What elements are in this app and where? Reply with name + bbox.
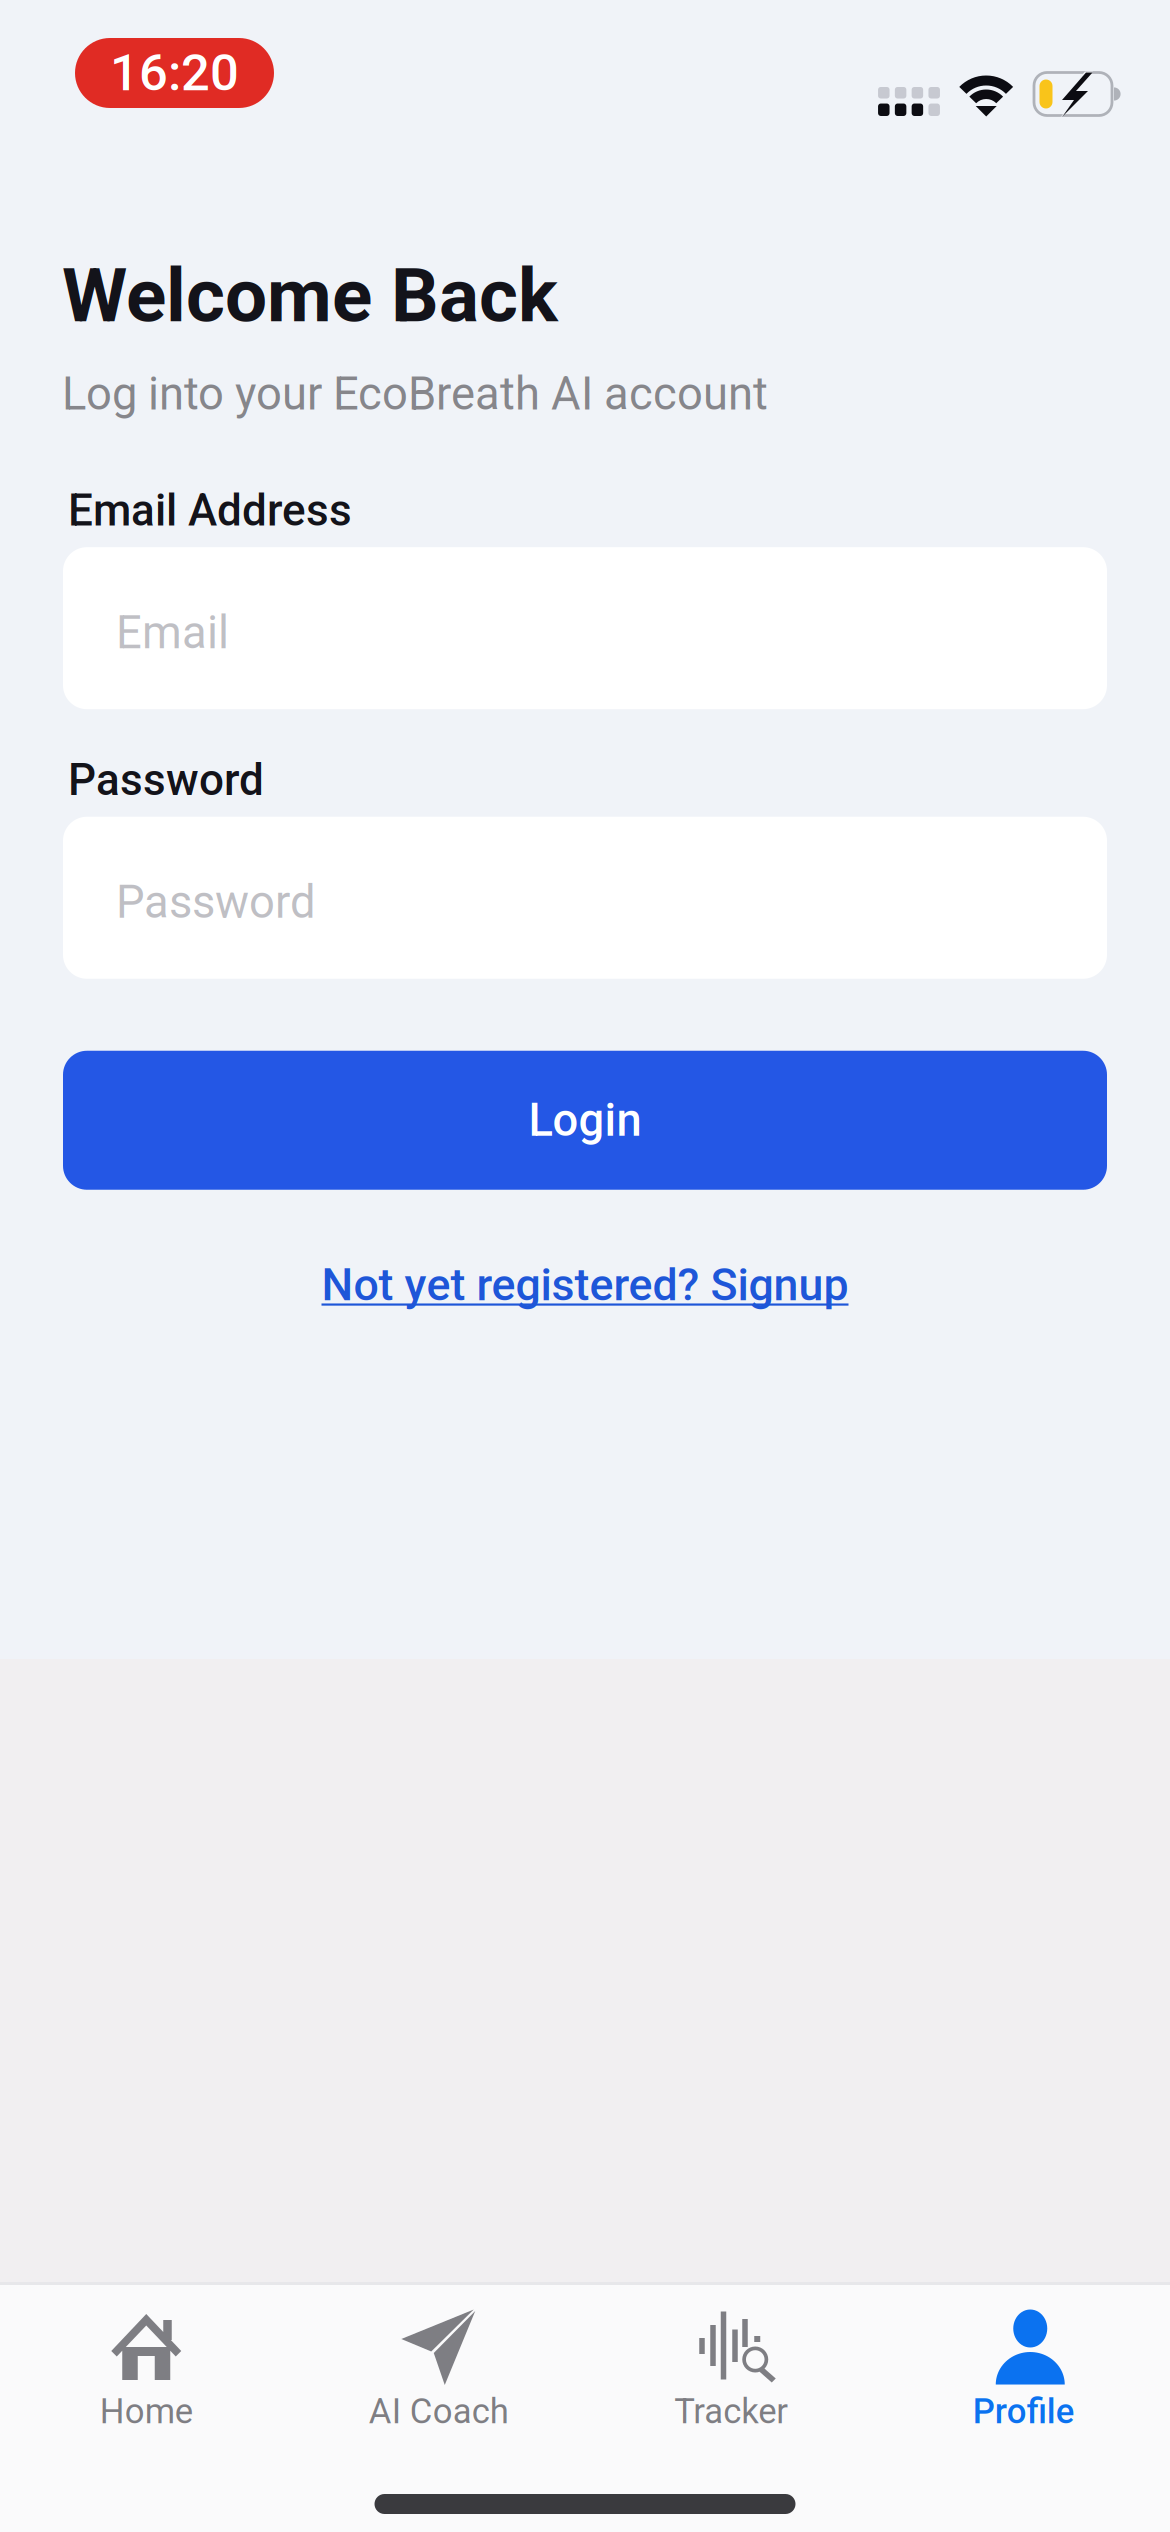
- button[interactable]: 16:20: [75, 38, 274, 108]
- staticText: Email: [116, 606, 229, 659]
- staticText: Home: [100, 2391, 193, 2432]
- button[interactable]: Profile: [877, 2285, 1170, 2446]
- staticText: Not yet registered? Signup: [321, 1259, 848, 1311]
- button[interactable]: Email: [0, 547, 1170, 709]
- button[interactable]: Not yet registered? Signup: [0, 1241, 1170, 1329]
- staticText: Tracker: [674, 2391, 788, 2432]
- button[interactable]: Home: [0, 2285, 292, 2446]
- staticText: Login: [528, 1094, 641, 1147]
- button[interactable]: Password: [0, 817, 1170, 979]
- staticText: Email Address: [68, 485, 352, 536]
- button[interactable]: Login: [0, 1051, 1170, 1190]
- staticText: Password: [68, 754, 264, 806]
- staticText: Welcome Back: [62, 252, 558, 339]
- staticText: 16:20: [110, 43, 239, 103]
- staticText: Profile: [973, 2391, 1075, 2432]
- button[interactable]: Tracker: [585, 2285, 877, 2446]
- staticText: Password: [116, 876, 316, 929]
- staticText: AI Coach: [369, 2391, 509, 2432]
- staticText: Log into your EcoBreath AI account: [62, 367, 768, 421]
- button[interactable]: AI Coach: [292, 2285, 585, 2446]
